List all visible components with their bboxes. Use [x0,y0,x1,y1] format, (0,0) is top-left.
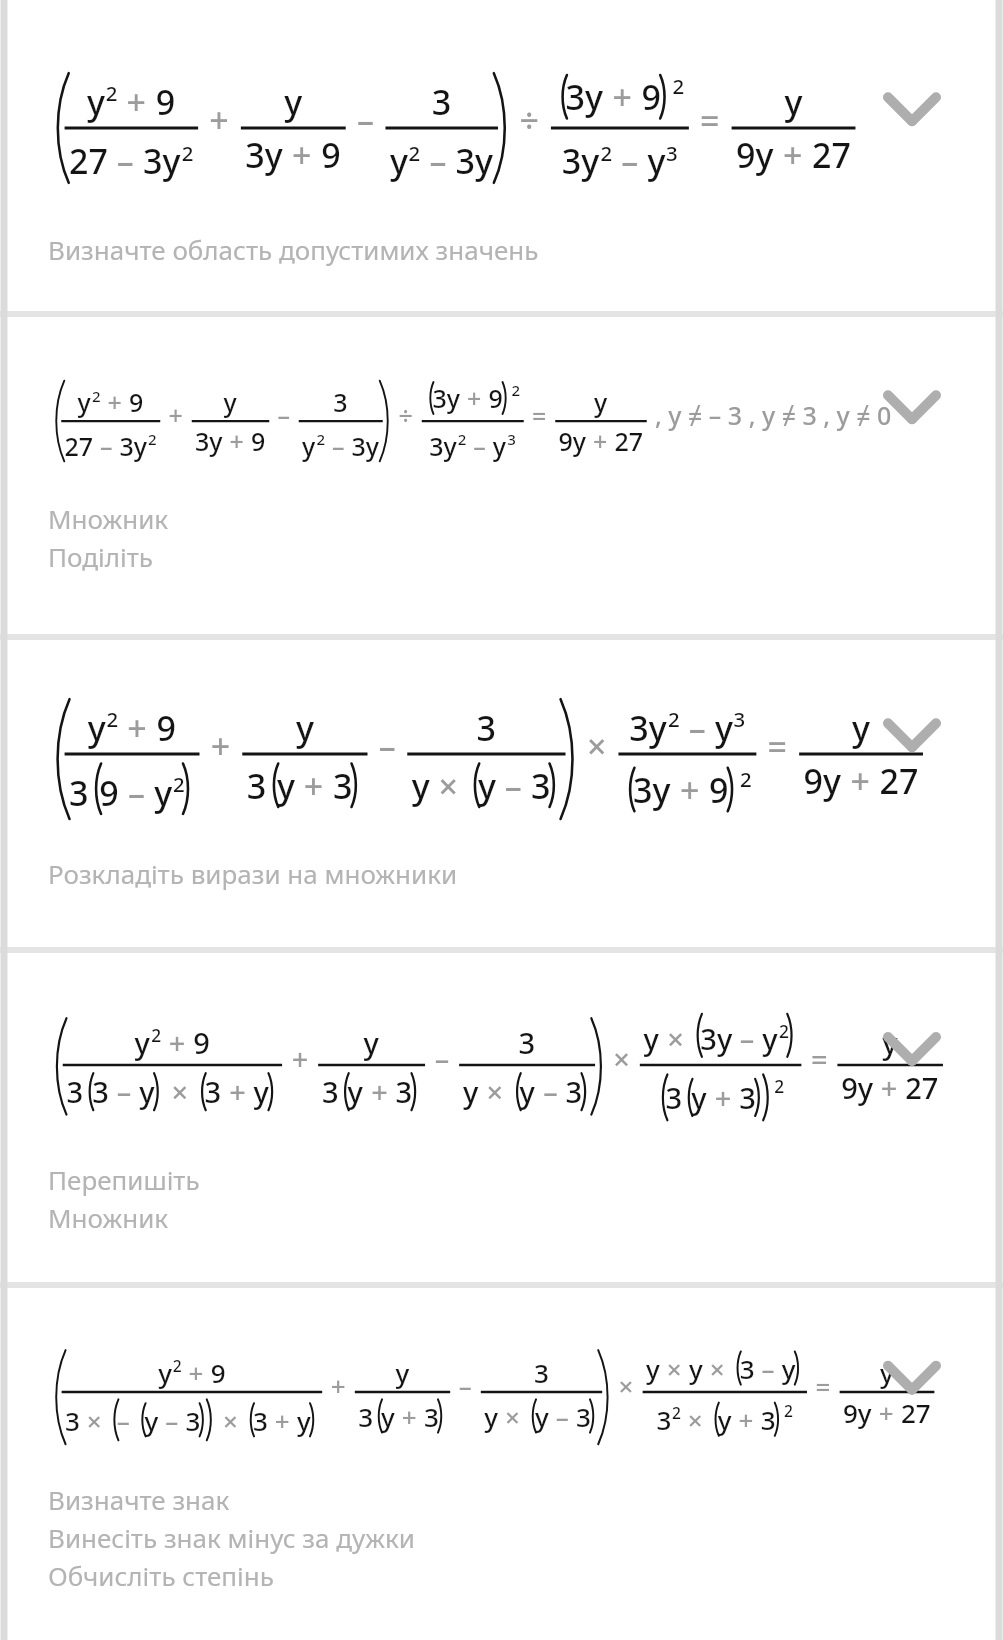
button[interactable]: Крок рішення [0,0,1003,311]
button[interactable]: Крок рішення [0,311,1003,634]
button[interactable]: Крок рішення [0,947,1003,1282]
button[interactable]: Крок рішення [0,634,1003,947]
button[interactable]: Крок рішення [0,1282,1003,1640]
